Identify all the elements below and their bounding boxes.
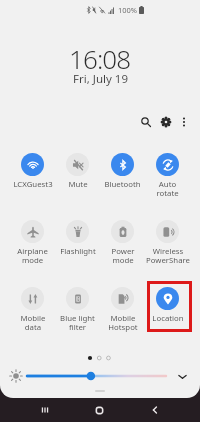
button[interactable]: Wireless PowerShare [145,209,190,276]
button[interactable]: Settings [156,112,176,132]
button[interactable] [26,370,167,382]
button[interactable]: Expand [175,369,189,383]
staticText: 16:08 [69,41,131,76]
button[interactable]: Flashlight [55,209,100,276]
button[interactable]: LCXGuest3 [10,142,55,209]
button[interactable]: Recent apps [18,398,72,422]
staticText: LCXGuest3 [13,179,53,190]
staticText: Location [152,313,184,324]
button[interactable]: Mobile Hotspot [100,276,145,343]
button[interactable]: Bluetooth [100,142,145,209]
staticText: Mobile data [20,313,46,333]
button[interactable]: More options [176,114,192,130]
staticText: Flashlight [60,246,96,257]
staticText: Power mode [111,246,135,266]
staticText: Auto rotate [156,179,179,199]
staticText: Airplane mode [17,246,48,266]
button[interactable]: Power mode [100,209,145,276]
button[interactable]: Mobile data [10,276,55,343]
button[interactable]: Mute [55,142,100,209]
button[interactable]: Search [136,112,156,132]
button[interactable]: Auto rotate [145,142,190,209]
button[interactable]: Location [145,276,190,343]
button[interactable]: Back [127,398,182,422]
staticText: Mobile Hotspot [108,313,138,333]
staticText: 100% [118,5,138,15]
button[interactable]: Home [72,398,127,422]
button[interactable]: Blue light filter [55,276,100,343]
button[interactable]: Airplane mode [10,209,55,276]
staticText: Mute [68,179,88,190]
staticText: Blue light filter [60,313,95,333]
staticText: Bluetooth [104,179,141,190]
staticText: Fri, July 19 [73,71,128,87]
staticText: Wireless PowerShare [146,246,190,266]
